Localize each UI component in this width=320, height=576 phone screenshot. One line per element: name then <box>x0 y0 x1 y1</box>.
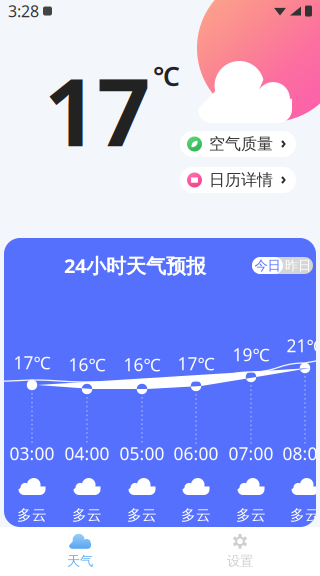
staticText: ℃ <box>153 58 180 93</box>
staticText: 07:00 <box>228 442 273 465</box>
button[interactable]: 日历详情 <box>180 167 296 193</box>
staticText: 多云 <box>72 506 102 524</box>
button[interactable]: 设置 <box>160 525 320 576</box>
staticText: 多云 <box>17 506 47 524</box>
staticText: 多云 <box>290 506 320 524</box>
staticText: 24小时天气预报 <box>64 252 206 279</box>
staticText: 设置 <box>227 553 253 569</box>
staticText: 17℃ <box>13 351 50 374</box>
staticText: 日历详情 <box>209 170 273 190</box>
staticText: 04:00 <box>64 442 109 465</box>
staticText: 17 <box>44 48 150 172</box>
staticText: 08:00 <box>282 442 320 465</box>
staticText: 03:00 <box>9 442 54 465</box>
staticText: 06:00 <box>173 442 218 465</box>
button[interactable]: 空气质量 <box>180 131 296 157</box>
button[interactable]: 昨日 <box>283 257 313 274</box>
staticText: 21℃ <box>286 334 320 357</box>
button[interactable]: 天气 <box>0 525 160 576</box>
button[interactable]: 今日 <box>252 257 283 274</box>
staticText: 19℃ <box>232 343 269 366</box>
staticText: 空气质量 <box>209 134 273 154</box>
staticText: 多云 <box>236 506 266 524</box>
staticText: 天气 <box>67 553 93 569</box>
staticText: 多云 <box>127 506 157 524</box>
staticText: 多云 <box>181 506 211 524</box>
staticText: 17℃ <box>177 352 214 375</box>
staticText: 05:00 <box>119 442 164 465</box>
staticText: 16℃ <box>68 353 105 376</box>
staticText: 昨日 <box>285 257 311 274</box>
staticText: 16℃ <box>123 353 160 376</box>
staticText: 3:28 <box>8 0 39 22</box>
staticText: 今日 <box>254 257 280 274</box>
